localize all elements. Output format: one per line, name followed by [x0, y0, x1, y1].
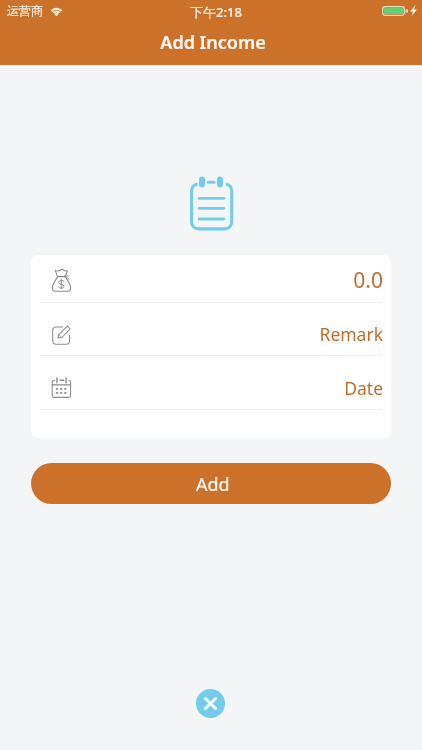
- button[interactable]: [31, 255, 391, 302]
- button[interactable]: [31, 302, 391, 356]
- staticText: 运营商: [7, 3, 43, 18]
- staticText: Remark: [319, 322, 383, 346]
- staticText: 下午2:18: [190, 3, 242, 21]
- staticText: 0.0: [353, 266, 383, 295]
- button[interactable]: Close: [196, 689, 225, 718]
- button[interactable]: Add: [31, 463, 391, 504]
- button[interactable]: [31, 355, 391, 409]
- staticText: Add Income: [2, 30, 422, 55]
- staticText: Date: [344, 376, 383, 400]
- staticText: Add: [196, 472, 230, 497]
